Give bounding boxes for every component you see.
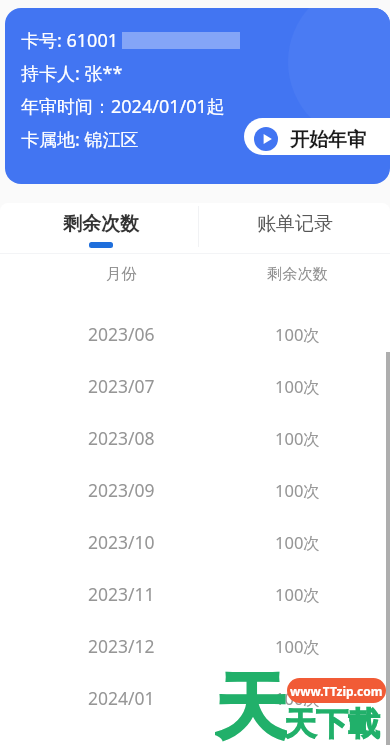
staticText: 100次 bbox=[275, 375, 320, 398]
staticText: 剩余次数 bbox=[267, 264, 328, 283]
button[interactable]: 2023/09 bbox=[0, 464, 390, 516]
staticText: 持卡人: 张** bbox=[21, 61, 123, 86]
staticText: 100次 bbox=[275, 531, 320, 554]
button[interactable]: 2023/12 bbox=[0, 620, 390, 672]
button[interactable]: 开始年审 bbox=[244, 118, 390, 155]
button[interactable]: 2024/01 bbox=[0, 672, 390, 724]
staticText: 2023/07 bbox=[88, 374, 155, 398]
staticText: 2024/01 bbox=[88, 686, 155, 710]
staticText: 2023/08 bbox=[88, 426, 155, 450]
staticText: 2023/06 bbox=[88, 322, 155, 346]
staticText: 2023/09 bbox=[88, 478, 155, 502]
staticText: 100次 bbox=[275, 583, 320, 606]
staticText: 100次 bbox=[275, 687, 320, 710]
staticText: 100次 bbox=[275, 479, 320, 502]
button[interactable]: 2023/10 bbox=[0, 516, 390, 568]
button[interactable]: 2023/07 bbox=[0, 360, 390, 412]
staticText: 卡属地: 锦江区 bbox=[21, 127, 139, 152]
staticText: 剩余次数 bbox=[63, 212, 139, 236]
staticText: 2023/11 bbox=[88, 582, 155, 606]
button[interactable]: 2023/06 bbox=[0, 308, 390, 360]
button[interactable]: 2023/11 bbox=[0, 568, 390, 620]
staticText: 2023/12 bbox=[88, 634, 155, 658]
staticText: 月份 bbox=[106, 264, 137, 283]
button[interactable]: 账单记录 bbox=[202, 203, 388, 253]
staticText: 年审时间：2024/01/01起 bbox=[21, 94, 225, 119]
staticText: 2023/10 bbox=[88, 530, 155, 554]
staticText: 100次 bbox=[275, 323, 320, 346]
staticText: 天 bbox=[215, 663, 287, 743]
staticText: 账单记录 bbox=[257, 212, 333, 236]
button[interactable]: 2023/08 bbox=[0, 412, 390, 464]
staticText: 卡号: 61001 bbox=[21, 28, 118, 53]
button[interactable]: 剩余次数 bbox=[0, 203, 202, 253]
staticText: 100次 bbox=[275, 427, 320, 450]
staticText: 开始年审 bbox=[290, 128, 366, 152]
staticText: 天下載 bbox=[284, 704, 380, 744]
staticText: www.TTzip.com bbox=[290, 683, 383, 699]
staticText: 100次 bbox=[275, 635, 320, 658]
